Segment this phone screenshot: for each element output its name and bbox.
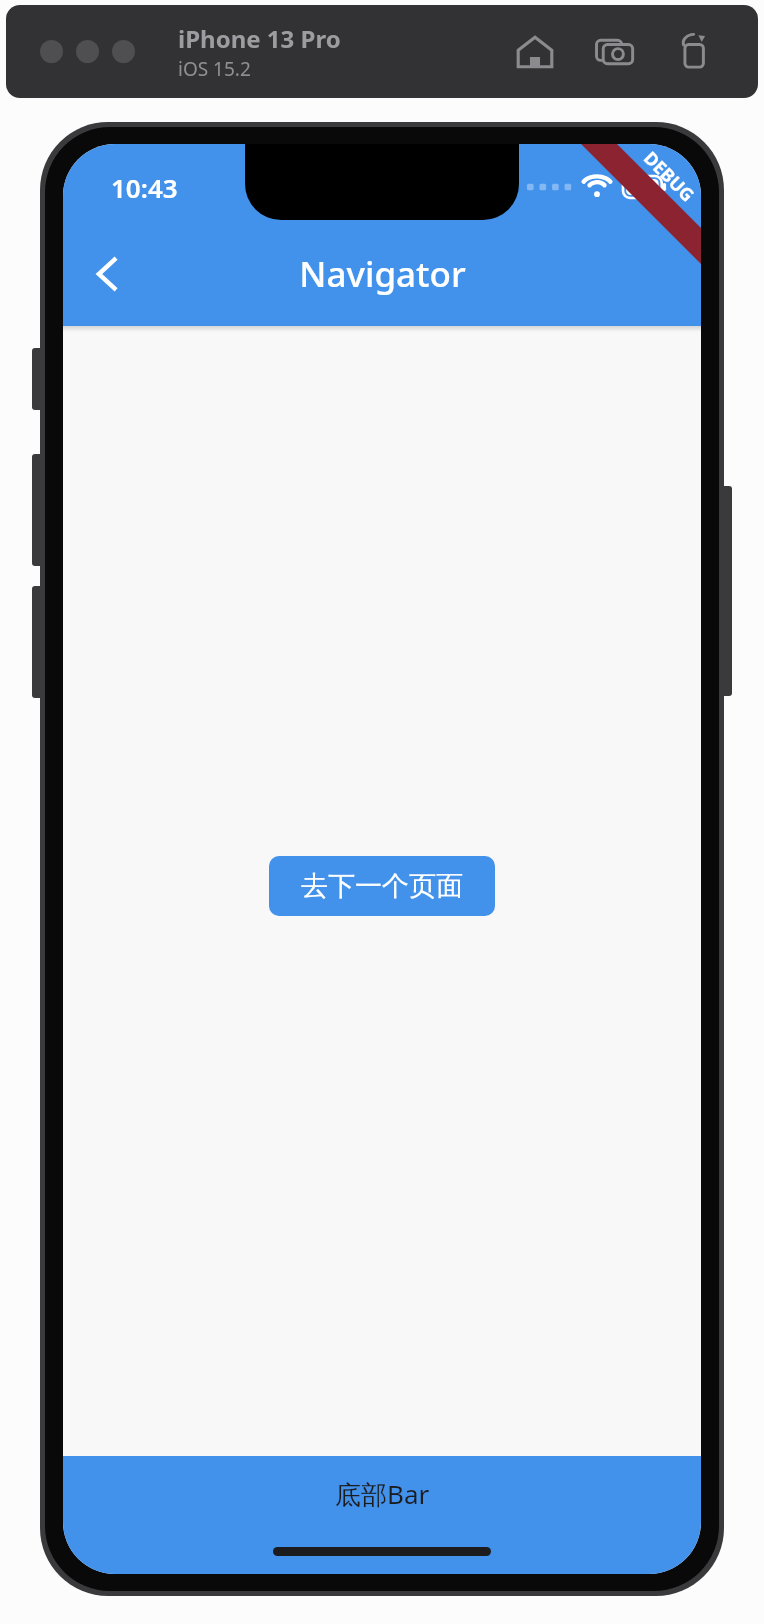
staticText: iOS 15.2 [178, 56, 251, 82]
button[interactable]: Silent switch [32, 348, 44, 410]
staticText: 去下一个页面 [301, 869, 463, 903]
button[interactable]: Screenshot [594, 31, 636, 73]
button[interactable] [112, 40, 135, 63]
button[interactable] [40, 40, 63, 63]
button[interactable]: Rotate [674, 31, 716, 73]
staticText: Navigator [299, 250, 466, 298]
staticText: iPhone 13 Pro [178, 22, 341, 55]
staticText: DEBUG [638, 146, 700, 207]
button[interactable]: Back [71, 238, 143, 310]
button[interactable]: Home [514, 31, 556, 73]
staticText: 底部Bar [335, 1476, 430, 1512]
button[interactable]: 去下一个页面 [269, 856, 495, 916]
button[interactable]: Volume up [32, 454, 44, 566]
button[interactable]: 底部Bar [63, 1456, 701, 1574]
button[interactable]: Power [720, 486, 732, 696]
staticText: 10:43 [111, 170, 178, 205]
button[interactable] [76, 40, 99, 63]
button[interactable]: Volume down [32, 586, 44, 698]
